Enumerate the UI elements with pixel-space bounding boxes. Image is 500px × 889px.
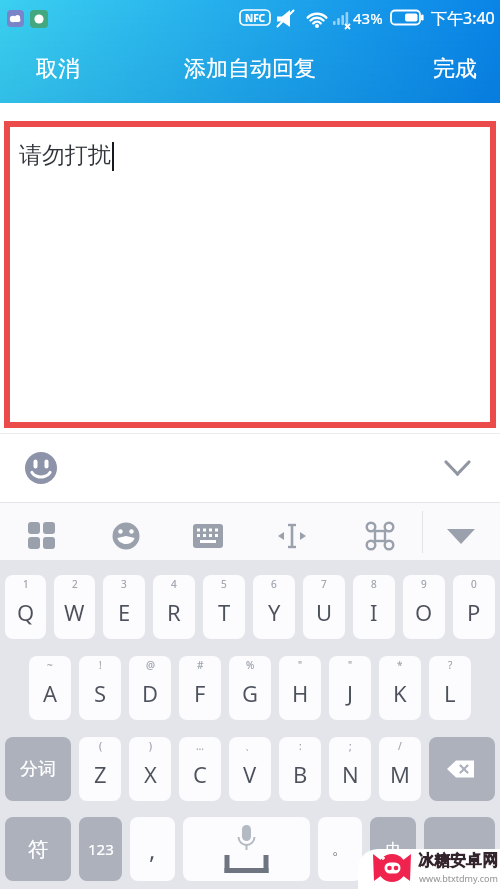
- button[interactable]: 、: [229, 737, 271, 801]
- button[interactable]: !: [79, 656, 121, 720]
- staticText: 0: [471, 577, 477, 591]
- button[interactable]: 5: [203, 575, 245, 639]
- button[interactable]: 8: [353, 575, 395, 639]
- button[interactable]: [429, 737, 495, 801]
- staticText: 冰糖安卓网: [418, 851, 498, 871]
- staticText: W: [64, 597, 85, 627]
- button[interactable]: [424, 817, 495, 881]
- staticText: P: [467, 597, 481, 627]
- button[interactable]: 2: [54, 575, 95, 639]
- button[interactable]: 符: [5, 817, 71, 881]
- button[interactable]: [440, 514, 484, 558]
- button[interactable]: @: [129, 656, 171, 720]
- staticText: A: [43, 678, 58, 708]
- button[interactable]: …: [179, 737, 221, 801]
- staticText: 6: [271, 577, 277, 591]
- button[interactable]: :: [279, 737, 321, 801]
- staticText: X: [144, 759, 157, 789]
- staticText: U: [316, 597, 333, 627]
- button[interactable]: ,: [130, 817, 175, 881]
- button[interactable]: 6: [253, 575, 295, 639]
- staticText: www.btxtdmy.com: [419, 872, 498, 884]
- staticText: O: [415, 597, 433, 627]
- staticText: ": [298, 658, 303, 672]
- button[interactable]: ": [279, 656, 321, 720]
- staticText: !: [99, 658, 102, 672]
- button[interactable]: #: [179, 656, 221, 720]
- button[interactable]: 3: [103, 575, 145, 639]
- button[interactable]: [20, 514, 64, 558]
- staticText: 请勿打扰: [19, 141, 111, 170]
- staticText: N: [342, 759, 359, 789]
- staticText: 添加自动回复: [184, 55, 316, 83]
- staticText: K: [393, 678, 407, 708]
- staticText: *: [397, 658, 403, 672]
- staticText: M: [390, 759, 410, 789]
- staticText: ~: [47, 658, 53, 672]
- button[interactable]: %: [229, 656, 271, 720]
- button[interactable]: [358, 514, 402, 558]
- button[interactable]: [104, 514, 148, 558]
- staticText: 5: [221, 577, 227, 591]
- button[interactable]: ;: [329, 737, 371, 801]
- staticText: J: [347, 678, 354, 708]
- staticText: @: [146, 658, 155, 672]
- staticText: ): [149, 739, 152, 753]
- staticText: ": [348, 658, 353, 672]
- button[interactable]: 中: [370, 817, 416, 881]
- button[interactable]: ~: [29, 656, 71, 720]
- staticText: 7: [321, 577, 327, 591]
- staticText: ;: [349, 739, 352, 753]
- button[interactable]: 取消: [28, 52, 88, 86]
- button[interactable]: [22, 449, 60, 487]
- staticText: T: [218, 597, 231, 627]
- staticText: %: [246, 658, 255, 672]
- button[interactable]: [4, 121, 496, 428]
- button[interactable]: 123: [79, 817, 122, 881]
- button[interactable]: /: [379, 737, 421, 801]
- staticText: B: [293, 759, 308, 789]
- button[interactable]: 分词: [5, 737, 71, 801]
- staticText: 符: [28, 837, 48, 862]
- button[interactable]: (: [79, 737, 121, 801]
- button[interactable]: 。: [318, 817, 362, 881]
- staticText: Q: [17, 597, 35, 627]
- staticText: R: [167, 597, 181, 627]
- staticText: :: [299, 739, 302, 753]
- staticText: 123: [88, 839, 114, 859]
- staticText: Z: [94, 759, 107, 789]
- staticText: ?: [448, 658, 453, 672]
- button[interactable]: [436, 452, 480, 486]
- button[interactable]: [186, 514, 230, 558]
- staticText: Y: [268, 597, 281, 627]
- button[interactable]: 4: [153, 575, 195, 639]
- button[interactable]: ?: [429, 656, 471, 720]
- staticText: 4: [171, 577, 177, 591]
- button[interactable]: 完成: [420, 52, 490, 86]
- staticText: 8: [371, 577, 377, 591]
- button[interactable]: [183, 817, 310, 881]
- staticText: 完成: [433, 55, 477, 83]
- staticText: 下午3:40: [431, 7, 495, 28]
- button[interactable]: [270, 514, 314, 558]
- staticText: I: [370, 597, 378, 627]
- staticText: 2: [72, 577, 78, 591]
- button[interactable]: ): [129, 737, 171, 801]
- button[interactable]: ": [329, 656, 371, 720]
- button[interactable]: 9: [403, 575, 445, 639]
- staticText: D: [142, 678, 159, 708]
- button[interactable]: 1: [5, 575, 46, 639]
- staticText: 3: [121, 577, 127, 591]
- button[interactable]: *: [379, 656, 421, 720]
- staticText: #: [197, 658, 204, 672]
- staticText: C: [193, 759, 207, 789]
- staticText: 9: [421, 577, 427, 591]
- staticText: ,: [149, 833, 156, 866]
- staticText: 中: [386, 840, 401, 859]
- button[interactable]: 7: [303, 575, 345, 639]
- staticText: G: [242, 678, 259, 708]
- button[interactable]: 0: [453, 575, 495, 639]
- staticText: NFC: [245, 11, 266, 25]
- staticText: F: [194, 678, 206, 708]
- staticText: L: [444, 678, 456, 708]
